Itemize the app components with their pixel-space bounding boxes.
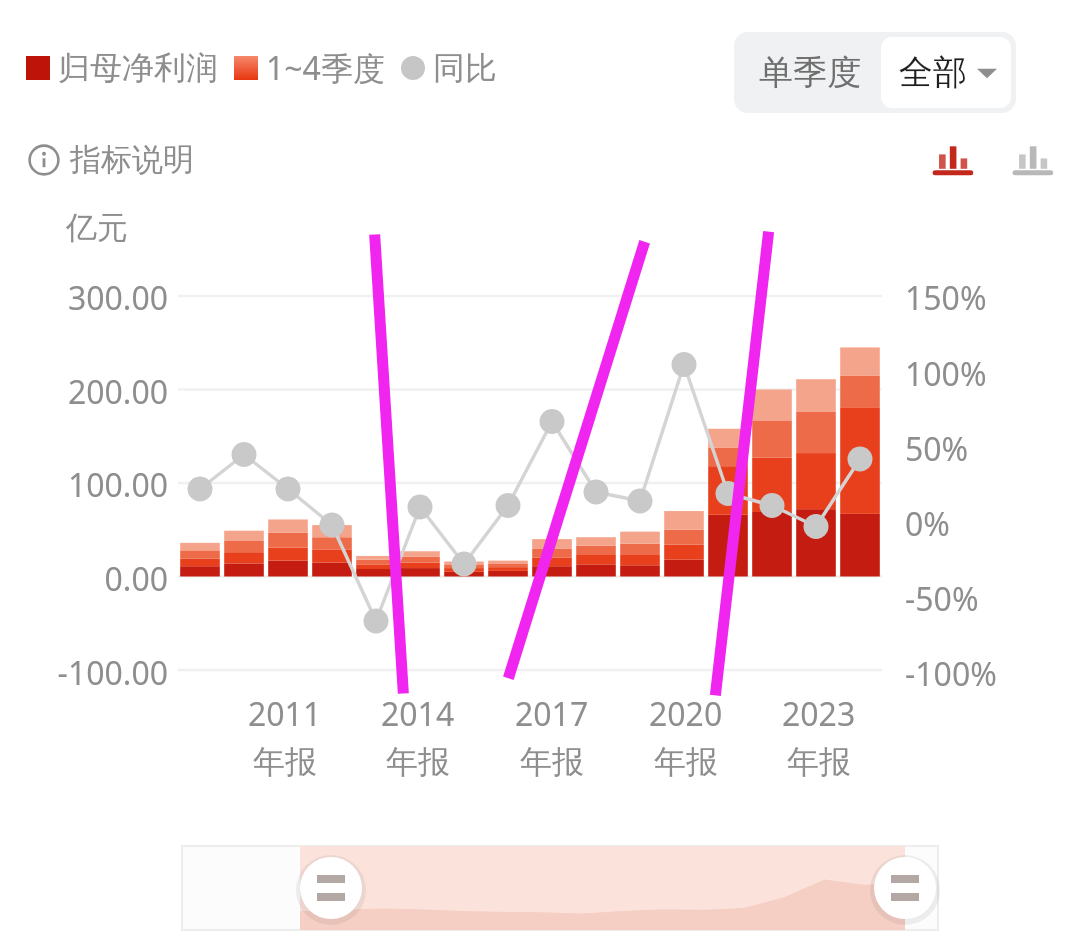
staticText: 单季度	[759, 51, 861, 94]
button[interactable]: 全部	[881, 37, 1011, 108]
staticText: 100.00	[0, 463, 168, 507]
button[interactable]: 右侧范围手柄	[874, 853, 936, 915]
staticText: 300.00	[0, 276, 168, 320]
staticText: 200.00	[0, 370, 168, 414]
staticText: 0.00	[0, 557, 168, 601]
button[interactable]: 左侧范围手柄	[300, 853, 362, 915]
staticText: 2017	[515, 692, 589, 736]
staticText: 年报	[520, 742, 584, 782]
staticText: 年报	[386, 742, 450, 782]
staticText: 0%	[905, 502, 950, 546]
staticText: 全部	[899, 51, 967, 94]
staticText: 年报	[787, 742, 851, 782]
staticText: 2014	[381, 692, 455, 736]
staticText: 归母净利润	[58, 48, 218, 88]
staticText: -50%	[905, 577, 979, 621]
staticText: 150%	[905, 276, 987, 320]
button[interactable]: 单季度	[739, 37, 881, 108]
staticText: 年报	[654, 742, 718, 782]
staticText: 年报	[253, 742, 317, 782]
button[interactable]: 指标说明	[28, 140, 194, 179]
staticText: 同比	[433, 48, 497, 88]
staticText: 亿元	[66, 208, 128, 247]
button[interactable]: 柱状图	[928, 136, 980, 180]
staticText: -100.00	[0, 651, 168, 695]
staticText: 2011	[248, 692, 322, 736]
staticText: -100%	[905, 652, 997, 696]
staticText: 100%	[905, 352, 987, 396]
staticText: 指标说明	[70, 140, 194, 179]
button[interactable]: 堆叠柱状图	[1008, 136, 1060, 180]
staticText: 2023	[782, 692, 856, 736]
staticText: 50%	[905, 427, 969, 471]
staticText: 1~4季度	[266, 46, 385, 90]
staticText: 2020	[649, 692, 723, 736]
